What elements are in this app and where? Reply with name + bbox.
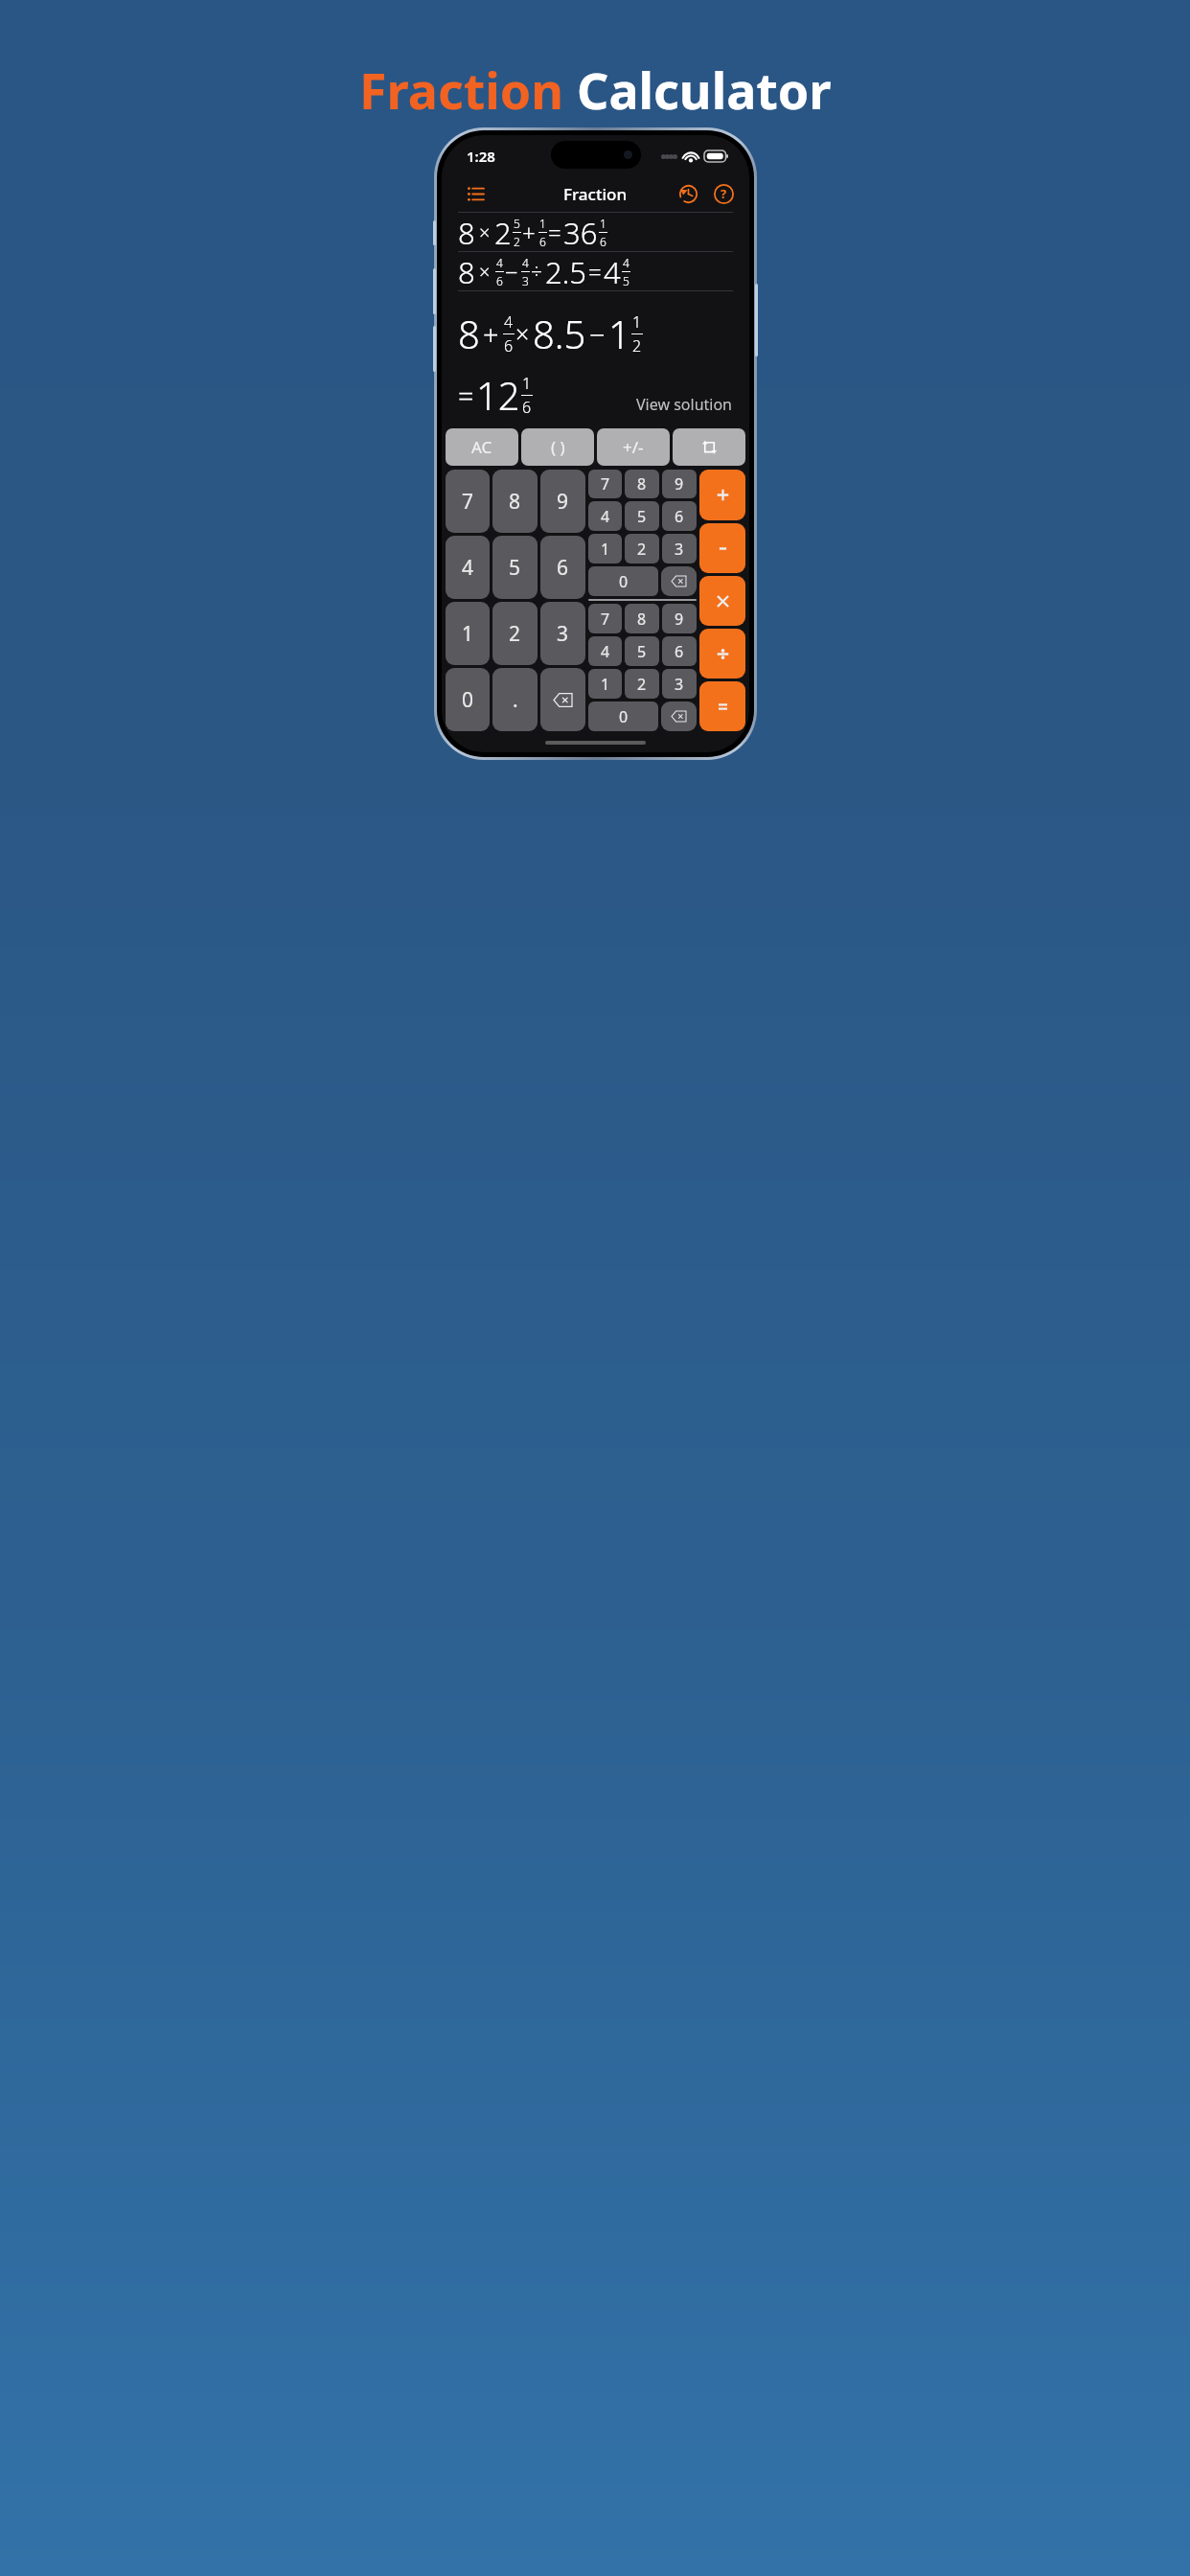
staticText: ×	[479, 219, 491, 245]
staticText: 6	[496, 273, 503, 288]
staticText: 0	[462, 686, 474, 714]
button[interactable]: Minus	[699, 523, 745, 573]
button[interactable]: Help	[707, 177, 740, 210]
staticText: .	[513, 686, 518, 714]
button[interactable]: Delete	[540, 668, 585, 731]
button[interactable]: Swap	[673, 428, 745, 466]
button[interactable]: Delete	[661, 566, 697, 596]
staticText: 5	[509, 554, 521, 582]
button[interactable]: Plus	[699, 470, 745, 520]
staticText: 2	[637, 674, 647, 695]
staticText: 6	[675, 506, 684, 527]
button[interactable]: AC	[446, 428, 518, 466]
button[interactable]: 2	[625, 669, 659, 699]
staticText: +	[483, 315, 499, 353]
staticText: AC	[471, 436, 492, 458]
button[interactable]: Divide	[699, 629, 745, 678]
staticText: +	[522, 217, 536, 248]
staticText: −	[505, 256, 518, 287]
staticText: +/-	[623, 436, 644, 458]
staticText: 9	[675, 473, 684, 494]
staticText: 0	[619, 571, 629, 592]
button[interactable]: 1	[446, 602, 490, 665]
button[interactable]: History	[672, 177, 704, 210]
staticText: 7	[601, 473, 610, 494]
staticText: 2	[514, 234, 520, 249]
button[interactable]: 7	[588, 470, 622, 498]
button[interactable]: 3	[540, 602, 585, 665]
button[interactable]: Delete	[661, 701, 697, 731]
button[interactable]: 6	[662, 636, 697, 666]
button[interactable]: Multiply	[699, 576, 745, 626]
button[interactable]: 7	[588, 604, 622, 633]
staticText: 2	[494, 213, 512, 251]
button[interactable]: +/-	[597, 428, 670, 466]
button[interactable]: 9	[662, 470, 697, 498]
button[interactable]: .	[492, 668, 538, 731]
button[interactable]: 4	[588, 636, 622, 666]
staticText: 8	[637, 609, 647, 630]
staticText: 2.5	[545, 252, 586, 290]
button[interactable]: 9	[662, 604, 697, 633]
button[interactable]: 2	[492, 602, 538, 665]
button[interactable]: 3	[662, 534, 697, 563]
button[interactable]: View solution	[636, 394, 733, 421]
button[interactable]: 7	[446, 470, 490, 533]
button[interactable]: Menu	[459, 177, 492, 210]
button[interactable]: 8	[492, 470, 538, 533]
staticText: 3	[675, 539, 684, 560]
staticText: 4	[601, 506, 610, 527]
staticText: 6	[600, 234, 606, 249]
staticText: 8	[637, 473, 647, 494]
staticText: 0	[619, 706, 629, 727]
staticText: 1	[600, 216, 606, 231]
button[interactable]: 4	[446, 536, 490, 599]
staticText: View solution	[636, 394, 733, 415]
staticText: 5	[637, 641, 647, 662]
staticText: 7	[462, 488, 474, 516]
staticText: 4	[496, 255, 503, 270]
staticText: 9	[675, 609, 684, 630]
button[interactable]: 4	[588, 501, 622, 531]
button[interactable]: 5	[625, 501, 659, 531]
staticText: ( )	[551, 436, 565, 458]
button[interactable]: 8	[625, 470, 659, 498]
button[interactable]: 6	[662, 501, 697, 531]
staticText: =	[548, 217, 561, 248]
button[interactable]: 1	[588, 669, 622, 699]
staticText: 9	[557, 488, 569, 516]
button[interactable]: 5	[625, 636, 659, 666]
button[interactable]: Equals	[699, 681, 745, 731]
staticText: 5	[623, 273, 629, 288]
button[interactable]: 0	[588, 701, 658, 731]
staticText: & Solution	[467, 131, 723, 199]
staticText: 3	[675, 674, 684, 695]
staticText: 36	[563, 213, 598, 251]
button[interactable]: 2	[625, 534, 659, 563]
button[interactable]: 9	[540, 470, 585, 533]
staticText: 4	[462, 554, 474, 582]
button[interactable]: 5	[492, 536, 538, 599]
button[interactable]: 8	[625, 604, 659, 633]
staticText: 6	[675, 641, 684, 662]
staticText: 4	[601, 641, 610, 662]
button[interactable]: 3	[662, 669, 697, 699]
staticText: Fraction	[359, 56, 577, 124]
button[interactable]: 0	[446, 668, 490, 731]
button[interactable]: 0	[588, 566, 658, 596]
button[interactable]: 6	[540, 536, 585, 599]
staticText: 8	[458, 252, 475, 290]
staticText: 5	[514, 216, 520, 231]
staticText: −	[589, 315, 606, 353]
button[interactable]: 1	[588, 534, 622, 563]
staticText: 8	[458, 308, 480, 359]
button[interactable]: ( )	[521, 428, 594, 466]
staticText: 4	[623, 255, 629, 270]
staticText: 2	[509, 620, 521, 648]
staticText: 6	[504, 335, 514, 356]
staticText: 4	[504, 311, 514, 333]
staticText: 3	[557, 620, 569, 648]
staticText: =	[588, 256, 602, 287]
staticText: ?	[721, 185, 727, 202]
staticText: ×	[515, 317, 530, 350]
